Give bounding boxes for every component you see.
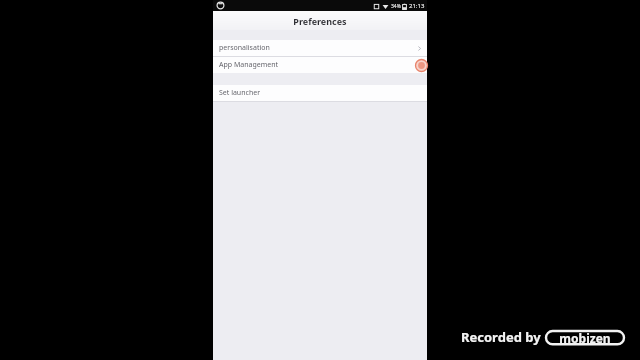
staticText: Preferences bbox=[293, 15, 347, 27]
staticText: 34% bbox=[391, 3, 401, 10]
staticText: Recorded by bbox=[461, 328, 541, 346]
other: App Management bbox=[415, 59, 428, 72]
staticText: App Management bbox=[219, 60, 410, 70]
button[interactable]: personalisation bbox=[213, 40, 427, 56]
other: Open personalisation bbox=[416, 45, 423, 52]
button[interactable]: Set launcher bbox=[213, 85, 427, 101]
staticText: Set launcher bbox=[219, 88, 423, 98]
button[interactable]: App Management bbox=[213, 57, 427, 73]
staticText: mobizen bbox=[559, 330, 611, 346]
staticText: personalisation bbox=[219, 43, 416, 53]
staticText: 21:13 bbox=[409, 2, 425, 10]
